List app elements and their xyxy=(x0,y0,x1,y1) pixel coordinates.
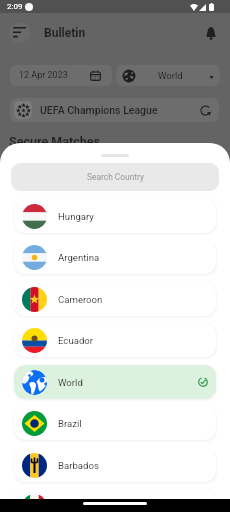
button[interactable]: Notifications xyxy=(200,22,222,44)
button[interactable]: Search Country xyxy=(11,163,219,191)
button[interactable]: Italy xyxy=(14,489,216,512)
staticText: Cameroon xyxy=(58,294,103,305)
button[interactable]: UEFA Champions League xyxy=(10,98,219,122)
button[interactable]: Ecuador xyxy=(14,323,216,357)
staticText: Barbados xyxy=(58,460,99,471)
staticText: Argentina xyxy=(58,252,100,263)
button[interactable]: World xyxy=(116,65,220,86)
button[interactable]: World xyxy=(14,365,216,399)
staticText: Search Country xyxy=(87,172,144,182)
staticText: World xyxy=(58,377,83,388)
staticText: Bulletin xyxy=(44,26,86,40)
staticText: 12 Apr 2023 xyxy=(19,70,68,81)
button[interactable]: Brazil xyxy=(14,406,216,440)
staticText: Ecuador xyxy=(58,335,94,346)
staticText: 2:09 xyxy=(7,2,23,11)
staticText: Hungary xyxy=(58,211,94,222)
staticText: UEFA Champions League xyxy=(40,104,158,116)
staticText: World xyxy=(158,70,183,81)
button[interactable]: Argentina xyxy=(14,240,216,274)
staticText: Secure Matches xyxy=(9,134,100,149)
button[interactable]: 12 Apr 2023 xyxy=(10,65,112,86)
button[interactable]: Barbados xyxy=(14,448,216,482)
button[interactable]: Cameroon xyxy=(14,282,216,316)
button[interactable]: Menu xyxy=(9,22,30,43)
staticText: Brazil xyxy=(58,418,82,429)
button[interactable]: Hungary xyxy=(14,199,216,233)
